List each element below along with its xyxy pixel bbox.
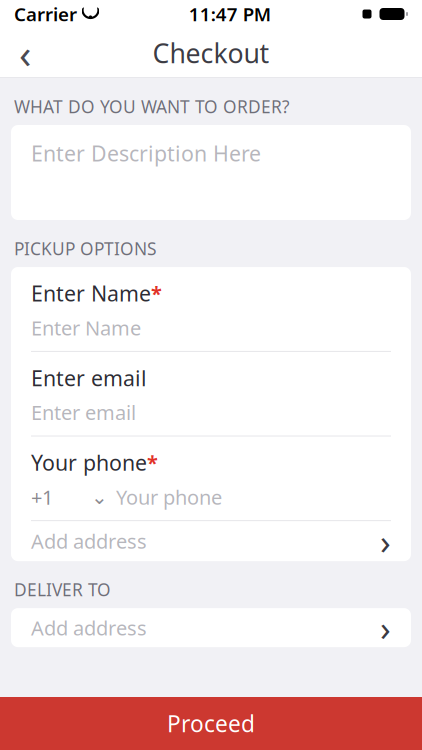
staticText: DELIVER TO	[14, 578, 111, 601]
staticText: Checkout	[152, 35, 269, 71]
staticText: ›	[380, 605, 391, 651]
staticText: Proceed	[167, 708, 255, 738]
staticText: Carrier	[14, 2, 77, 26]
staticText: Enter Name	[31, 279, 151, 307]
staticText: ⌄	[91, 486, 108, 508]
staticText: Add address	[31, 614, 147, 641]
button[interactable]: Your phone	[11, 436, 411, 521]
staticText: *	[147, 449, 158, 476]
staticText: WHAT DO YOU WANT TO ORDER?	[14, 95, 290, 118]
staticText: Enter Description Here	[31, 139, 261, 167]
staticText: 11:47 PM	[189, 2, 271, 26]
button[interactable]: Proceed	[0, 697, 422, 750]
button[interactable]: Enter Description Here	[11, 125, 411, 220]
staticText: Enter email	[31, 364, 147, 392]
staticText: *	[151, 280, 162, 306]
button[interactable]: Add address	[11, 608, 411, 647]
staticText: ›	[380, 518, 391, 564]
staticText: Your phone	[31, 448, 147, 477]
staticText: +1	[31, 484, 53, 510]
button[interactable]: Enter email	[11, 352, 411, 436]
staticText: Add address	[31, 528, 147, 554]
staticText: PICKUP OPTIONS	[14, 237, 157, 260]
staticText: Enter Name	[31, 314, 141, 341]
button[interactable]: Add address	[11, 521, 411, 561]
staticText: Enter email	[31, 399, 136, 426]
button[interactable]: Back	[0, 28, 50, 78]
staticText: ‹	[19, 26, 31, 79]
button[interactable]: Enter Name	[11, 267, 411, 352]
staticText: Your phone	[116, 484, 222, 510]
